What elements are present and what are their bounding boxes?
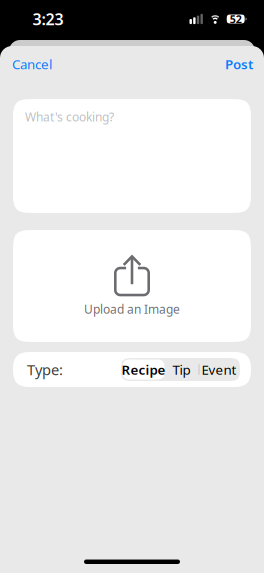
button[interactable]: Post [225,49,253,79]
staticText: Upload an Image [84,301,180,317]
staticText: What's cooking? [25,109,114,125]
button[interactable]: Recipe [122,359,164,379]
staticText: Event [201,361,236,378]
button[interactable]: Cancel [12,49,52,79]
staticText: Recipe [121,361,165,378]
button[interactable]: Event [199,359,238,379]
staticText: 52 [230,12,242,26]
staticText: Type: [27,360,63,379]
staticText: Cancel [12,55,52,73]
button[interactable]: Tip [164,359,198,379]
staticText: 3:23 [32,8,63,30]
staticText: Tip [172,361,190,378]
button[interactable]: Upload an Image [13,230,251,342]
staticText: Post [225,55,253,73]
